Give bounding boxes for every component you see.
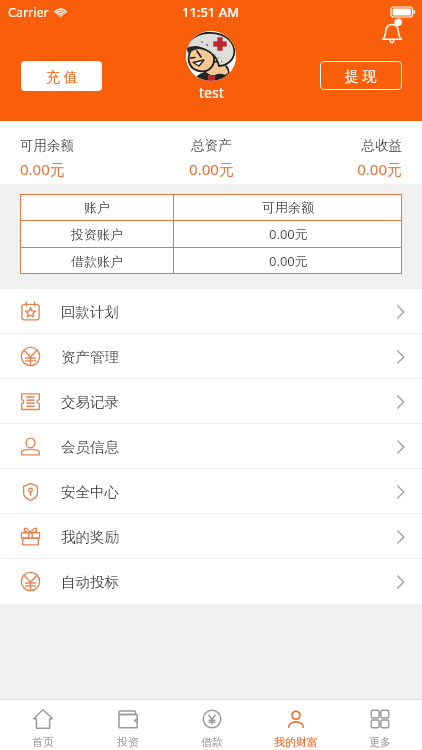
staticText: 提 现 [345, 66, 377, 85]
staticText: 0.00元 [20, 159, 148, 179]
staticText: 我的奖励 [61, 528, 119, 546]
staticText: 交易记录 [61, 393, 119, 411]
button[interactable]: 投资 [85, 700, 170, 750]
button[interactable]: 借款 [170, 700, 254, 750]
staticText: 我的财富 [274, 735, 318, 749]
staticText: 11:51 AM [182, 3, 240, 21]
staticText: 0.00元 [275, 159, 402, 179]
staticText: 0.00元 [269, 225, 308, 243]
staticText: 投资 [117, 735, 139, 749]
staticText: 可用余额 [262, 199, 314, 215]
staticText: 可用余额 [20, 137, 148, 154]
staticText: 回款计划 [61, 303, 119, 321]
button[interactable]: 我的财富 [254, 700, 338, 750]
staticText: 借款账户 [71, 253, 123, 269]
staticText: 资产管理 [61, 348, 119, 366]
button[interactable]: 充 值 [21, 61, 102, 91]
button[interactable]: 资产管理 [0, 334, 422, 379]
staticText: 会员信息 [61, 438, 119, 456]
button[interactable]: Notifications [381, 18, 407, 44]
staticText: Carrier [8, 4, 49, 21]
staticText: 0.00元 [269, 252, 308, 270]
staticText: 总收益 [275, 137, 402, 154]
button[interactable]: 提 现 [320, 61, 402, 90]
button[interactable]: 会员信息 [0, 424, 422, 469]
button[interactable]: 我的奖励 [0, 514, 422, 559]
staticText: 充 值 [46, 67, 78, 86]
staticText: 借款 [201, 735, 223, 749]
staticText: 总资产 [148, 137, 275, 154]
staticText: 更多 [369, 735, 391, 749]
staticText: 投资账户 [71, 226, 123, 242]
button[interactable]: 安全中心 [0, 469, 422, 514]
staticText: 0.00元 [148, 159, 275, 179]
button[interactable]: 首页 [0, 700, 85, 750]
staticText: 首页 [32, 735, 54, 749]
button[interactable]: 交易记录 [0, 379, 422, 424]
button[interactable]: 回款计划 [0, 289, 422, 334]
button[interactable]: 更多 [338, 700, 422, 750]
staticText: 安全中心 [61, 483, 119, 501]
staticText: 账户 [84, 199, 110, 215]
button[interactable]: Profile avatar [186, 31, 236, 81]
staticText: 自动投标 [61, 573, 119, 591]
staticText: test [199, 83, 224, 102]
button[interactable]: 自动投标 [0, 559, 422, 604]
